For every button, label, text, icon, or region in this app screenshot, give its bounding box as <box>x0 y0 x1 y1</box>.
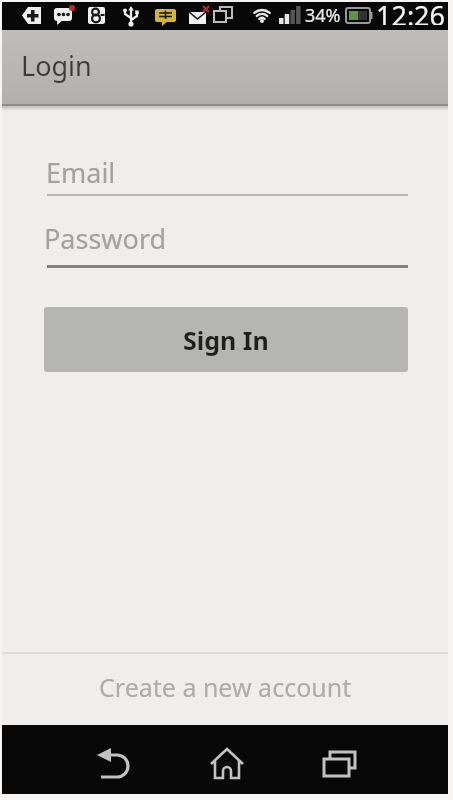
staticText: Sign In <box>183 323 269 357</box>
staticText: Login <box>21 47 92 84</box>
staticText: 12:26 <box>376 0 446 25</box>
button[interactable] <box>312 725 372 794</box>
staticText: Password <box>44 220 167 257</box>
button[interactable] <box>87 725 147 794</box>
staticText: 34% <box>305 3 341 28</box>
button[interactable]: Create a new account <box>2 657 448 717</box>
staticText: Email <box>46 154 116 191</box>
staticText: Create a new account <box>99 670 352 704</box>
button[interactable] <box>197 725 257 794</box>
button[interactable]: Sign In <box>44 307 408 372</box>
